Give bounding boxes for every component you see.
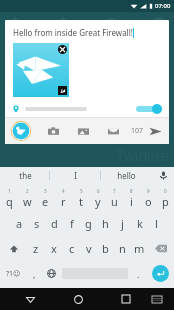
staticText: r	[61, 194, 66, 209]
button[interactable]: 3	[36, 186, 54, 211]
staticText: 3	[44, 188, 47, 194]
staticText: d	[51, 216, 58, 231]
staticText: j	[121, 216, 124, 231]
staticText: I	[74, 170, 77, 181]
staticText: z	[33, 241, 39, 256]
button[interactable]: 1	[0, 186, 18, 211]
staticText: a	[16, 216, 23, 231]
button[interactable]: d	[46, 211, 63, 236]
staticText: hello	[117, 170, 136, 181]
button[interactable]: Home	[67, 288, 89, 310]
button[interactable]: Location	[12, 101, 162, 117]
button[interactable]: Enter	[152, 265, 169, 282]
button[interactable]: Send	[147, 123, 163, 139]
button[interactable]: Shift	[0, 236, 27, 261]
button[interactable]: z	[27, 236, 45, 261]
button[interactable]: Change language	[43, 261, 60, 286]
button[interactable]: v	[80, 236, 97, 261]
button[interactable]: k	[131, 211, 148, 236]
button[interactable]: l	[148, 211, 165, 236]
button[interactable]: I	[50, 167, 101, 184]
staticText: the	[19, 170, 32, 181]
staticText: n	[119, 241, 126, 256]
staticText: v	[86, 241, 92, 256]
staticText: o	[145, 194, 152, 209]
button[interactable]: Voice input	[152, 167, 174, 184]
button[interactable]: Remove image	[13, 43, 69, 97]
button[interactable]: 5	[72, 186, 89, 211]
other: Location	[12, 105, 20, 113]
button[interactable]: the	[0, 167, 50, 184]
button[interactable]: Switch keyboard	[146, 288, 168, 310]
button[interactable]: hello	[101, 167, 152, 184]
button[interactable]: b	[97, 236, 114, 261]
staticText: b	[102, 241, 109, 256]
button[interactable]: f	[63, 211, 80, 236]
button[interactable]: g	[80, 211, 97, 236]
staticText: 6	[97, 188, 100, 194]
button[interactable]: c	[63, 236, 80, 261]
button[interactable]: Camera	[45, 123, 61, 139]
staticText: y	[95, 194, 101, 209]
staticText: p	[162, 194, 169, 209]
button[interactable]: x	[45, 236, 63, 261]
staticText: u	[111, 194, 118, 209]
staticText: Hello from inside Great Firewall!	[13, 27, 133, 38]
button[interactable]: .	[130, 261, 147, 286]
button[interactable]: n	[114, 236, 131, 261]
staticText: q	[6, 194, 13, 209]
staticText: 9	[147, 188, 150, 194]
staticText: 0	[164, 188, 167, 194]
button[interactable]: Account	[11, 121, 31, 141]
staticText: m	[134, 241, 145, 256]
button[interactable]: 9	[140, 186, 157, 211]
staticText: k	[137, 216, 143, 231]
staticText: e	[42, 194, 49, 209]
staticText: .	[137, 268, 140, 280]
button[interactable]: Edit image	[58, 86, 67, 95]
button[interactable]: Location toggle	[136, 104, 162, 114]
button[interactable]: 0	[157, 186, 174, 211]
button[interactable]: m	[131, 236, 148, 261]
staticText: 8	[130, 188, 133, 194]
staticText: 5	[80, 188, 83, 194]
staticText: f	[70, 216, 74, 231]
staticText: 4	[62, 188, 65, 194]
staticText: i	[130, 194, 133, 209]
staticText: 2	[26, 188, 29, 194]
staticText: ,	[33, 268, 36, 280]
staticText: c	[69, 241, 75, 256]
staticText: 107	[131, 126, 144, 136]
staticText: h	[102, 216, 109, 231]
button[interactable]: Back	[19, 288, 41, 310]
staticText: s	[34, 216, 40, 231]
button[interactable]: a	[10, 211, 28, 236]
staticText: 7	[113, 188, 116, 194]
button[interactable]: Gallery	[75, 123, 91, 139]
button[interactable]: 7	[106, 186, 123, 211]
button[interactable]: 8	[123, 186, 140, 211]
button[interactable]: Remove image	[58, 45, 67, 54]
button[interactable]: 4	[54, 186, 72, 211]
button[interactable]: s	[28, 211, 46, 236]
button[interactable]: ?1☺	[0, 261, 26, 286]
button[interactable]: j	[114, 211, 131, 236]
button[interactable]: Delete	[148, 236, 174, 261]
staticText: w	[23, 194, 32, 209]
staticText: 1	[8, 188, 11, 194]
button[interactable]: 6	[89, 186, 106, 211]
staticText: l	[155, 216, 158, 231]
staticText: t	[79, 194, 83, 209]
staticText: x	[51, 241, 57, 256]
button[interactable]: h	[97, 211, 114, 236]
staticText: g	[85, 216, 92, 231]
button[interactable]: 2	[18, 186, 36, 211]
staticText: ?1☺	[6, 269, 21, 279]
button[interactable]: ,	[26, 261, 43, 286]
button[interactable]: Drafts	[105, 123, 121, 139]
button[interactable]: Recent apps	[115, 288, 137, 310]
staticText: 07:00	[155, 2, 171, 10]
